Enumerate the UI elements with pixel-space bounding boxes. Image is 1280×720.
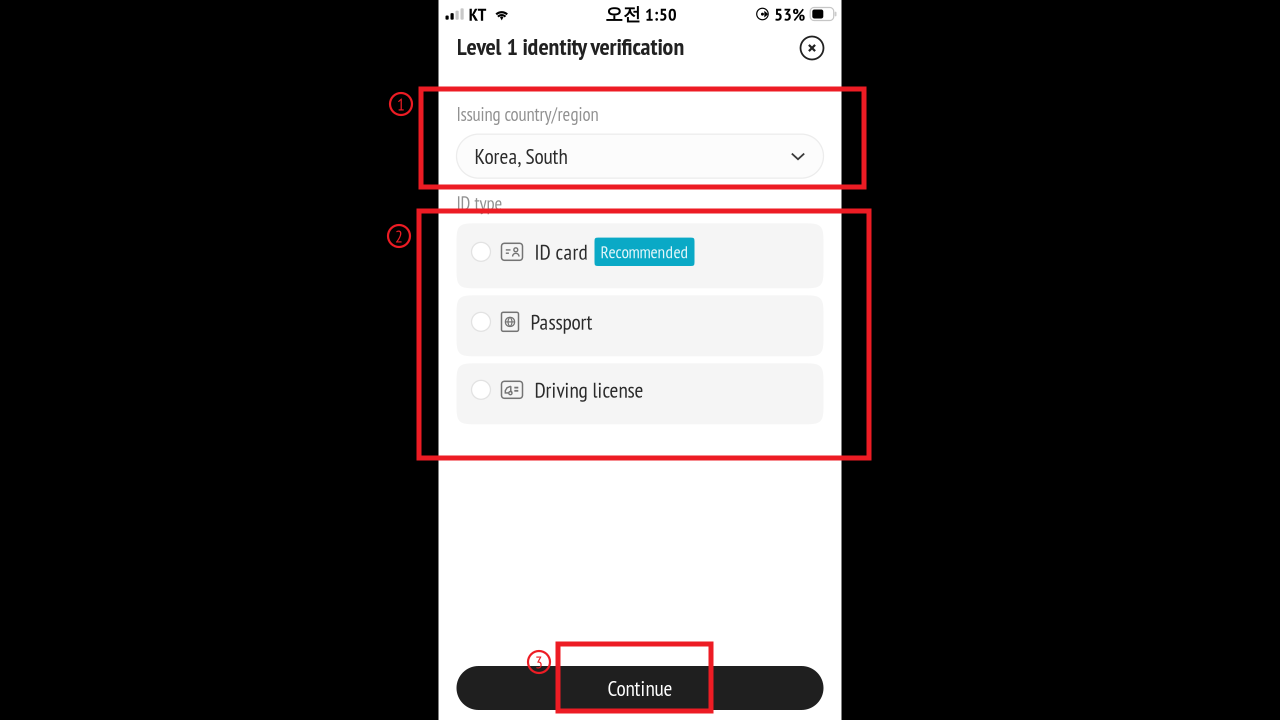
staticText: 오전 1:50 bbox=[605, 2, 677, 26]
staticText: ID card bbox=[534, 238, 587, 266]
staticText: 3 bbox=[535, 651, 543, 673]
button[interactable]: Close bbox=[800, 32, 823, 59]
button[interactable]: ID card bbox=[456, 223, 823, 288]
staticText: KT bbox=[469, 2, 487, 26]
staticText: 1 bbox=[397, 93, 405, 115]
button[interactable]: Passport bbox=[456, 295, 823, 356]
staticText: 53% bbox=[774, 2, 805, 26]
staticText: Recommended bbox=[600, 241, 688, 263]
button[interactable]: Driving license bbox=[456, 363, 823, 424]
staticText: Driving license bbox=[534, 376, 643, 404]
staticText: 2 bbox=[395, 225, 403, 247]
staticText: Korea, South bbox=[474, 142, 567, 170]
staticText: Issuing country/region bbox=[456, 102, 598, 126]
button[interactable]: Continue bbox=[456, 666, 823, 710]
staticText: Passport bbox=[530, 308, 592, 336]
staticText: Continue bbox=[607, 674, 672, 702]
staticText: ID type bbox=[456, 191, 502, 215]
button[interactable]: Korea, South bbox=[456, 134, 823, 178]
staticText: Level 1 identity verification bbox=[456, 30, 684, 62]
